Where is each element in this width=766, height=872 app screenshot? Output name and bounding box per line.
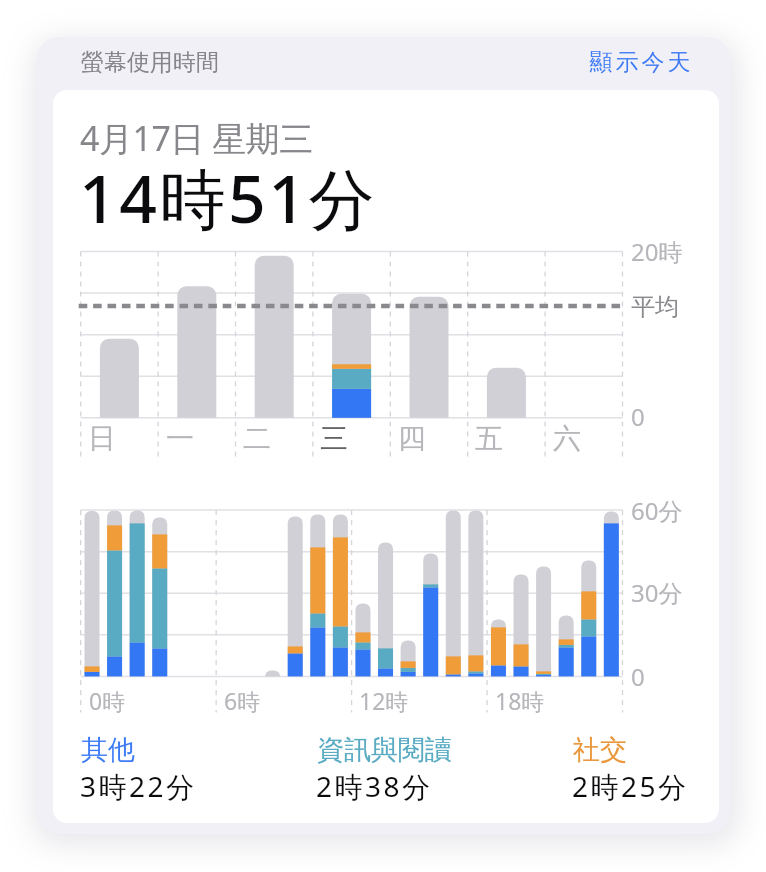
staticText: 一: [166, 421, 194, 456]
staticText: 資訊與閱讀: [317, 733, 452, 767]
staticText: 2時25分: [572, 767, 689, 805]
staticText: 0: [631, 400, 645, 433]
staticText: 0時: [89, 685, 126, 716]
staticText: 其他: [81, 733, 135, 767]
button[interactable]: [37, 37, 730, 834]
staticText: 3時22分: [80, 767, 197, 805]
staticText: 四: [398, 421, 426, 456]
staticText: 螢幕使用時間: [81, 48, 219, 77]
staticText: 三: [320, 421, 348, 456]
staticText: 六: [553, 421, 581, 456]
staticText: 18時: [495, 685, 545, 716]
staticText: 60分: [631, 494, 683, 527]
staticText: 2時38分: [316, 767, 433, 805]
staticText: 4月17日 星期三: [80, 115, 313, 161]
staticText: 日: [88, 421, 116, 456]
button[interactable]: 顯示今天: [588, 48, 692, 77]
staticText: 五: [475, 421, 503, 456]
staticText: 20時: [631, 235, 683, 268]
staticText: 12時: [359, 685, 409, 716]
staticText: 6時: [224, 685, 261, 716]
staticText: 社交: [573, 733, 627, 767]
staticText: 二: [243, 421, 271, 456]
staticText: 平均: [631, 292, 679, 322]
staticText: 14時51分: [79, 152, 378, 242]
staticText: 0: [631, 660, 645, 693]
staticText: 30分: [631, 576, 683, 609]
